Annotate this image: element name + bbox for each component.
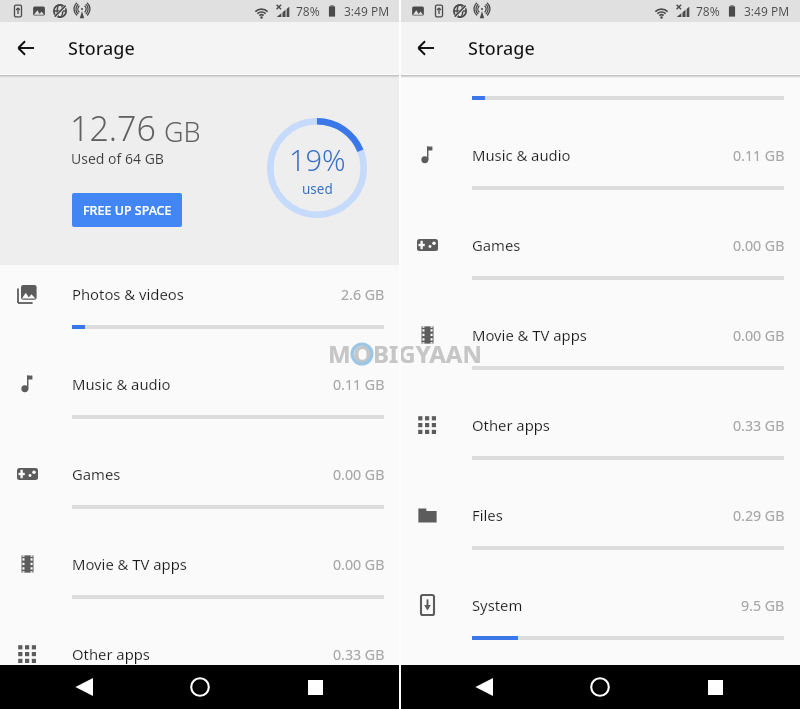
staticText: 0.33 GB [733,416,785,435]
button[interactable]: Other apps [0,625,400,709]
staticText: 3:49 PM [344,3,390,19]
staticText: 0.11 GB [333,375,385,394]
staticText: Other apps [72,644,150,664]
button[interactable]: System [400,576,800,666]
staticText: 2.6 GB [341,285,385,304]
staticText: Movie & TV apps [472,325,587,345]
button[interactable]: Photos & videos [0,265,400,355]
staticText: GB [164,113,201,150]
staticText: 3:49 PM [744,3,790,19]
button[interactable]: Music & audio [400,126,800,216]
staticText: Music & audio [72,374,171,394]
button[interactable]: Movie & TV apps [0,535,400,625]
staticText: Photos & videos [72,284,184,304]
button[interactable]: Games [0,445,400,535]
staticText: Movie & TV apps [72,554,187,574]
staticText: 0.33 GB [333,645,385,664]
staticText: 78% [696,3,720,19]
staticText: 0.29 GB [733,506,785,525]
staticText: 0.11 GB [733,146,785,165]
button[interactable]: Home [180,665,220,709]
staticText: used [302,180,333,198]
button[interactable]: Back [465,665,505,709]
staticText: Files [472,505,503,525]
staticText: System [472,595,523,615]
staticText: 12.76 [70,105,156,151]
staticText: BIGYAAN [373,337,482,370]
staticText: 0.00 GB [333,555,385,574]
button[interactable]: Other apps [400,396,800,486]
staticText: 0.00 GB [733,326,785,345]
staticText: 19% [289,140,346,179]
staticText: Games [472,235,521,255]
button[interactable]: Files [400,486,800,576]
button[interactable]: Music & audio [0,355,400,445]
staticText: Music & audio [472,145,571,165]
button[interactable]: Movie & TV apps [400,306,800,396]
staticText: Games [72,464,121,484]
staticText: Storage [468,36,535,61]
staticText: 0.00 GB [733,236,785,255]
staticText: 9.5 GB [741,596,785,615]
staticText: 0.00 GB [333,465,385,484]
button[interactable]: FREE UP SPACE [72,193,182,227]
button[interactable]: Games [400,216,800,306]
staticText: Used of 64 GB [71,149,164,168]
button[interactable]: Home [580,665,620,709]
staticText: Other apps [472,415,550,435]
staticText: O [353,337,372,370]
button[interactable]: Navigate up [400,22,452,74]
button[interactable]: Recent apps [295,665,335,709]
staticText: M [328,337,351,370]
button[interactable]: Recent apps [695,665,735,709]
staticText: 78% [296,3,320,19]
staticText: Storage [68,36,135,61]
staticText: FREE UP SPACE [83,202,172,219]
button[interactable]: Navigate up [0,22,52,74]
button[interactable]: Back [65,665,105,709]
